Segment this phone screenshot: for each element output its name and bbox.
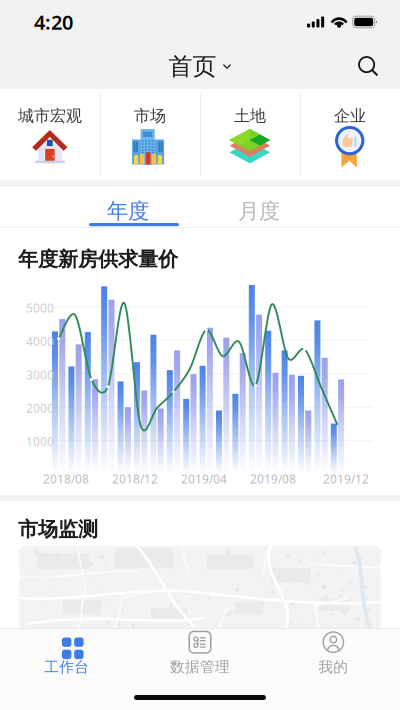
staticText: 2019/04: [181, 471, 227, 487]
staticText: 市场监测: [18, 517, 98, 542]
staticText: 4000: [26, 333, 54, 349]
staticText: 3000: [26, 367, 54, 383]
staticText: 城市宏观: [18, 106, 82, 126]
staticText: 2018/12: [112, 471, 158, 487]
staticText: 2000: [26, 400, 54, 416]
staticText: 我的: [318, 658, 348, 676]
button[interactable]: 土地: [200, 89, 300, 180]
staticText: 2019/12: [323, 471, 369, 487]
button[interactable]: 年度: [89, 187, 179, 228]
staticText: 数据管理: [170, 658, 230, 676]
button[interactable]: Search: [350, 48, 387, 85]
staticText: 工作台: [44, 658, 89, 676]
button[interactable]: 数据管理: [133, 624, 267, 683]
staticText: 5000: [26, 300, 54, 316]
staticText: 年度: [107, 198, 149, 224]
staticText: 首页: [168, 52, 216, 81]
button[interactable]: 首页: [158, 45, 241, 88]
staticText: 土地: [234, 106, 266, 126]
staticText: 月度: [238, 198, 280, 224]
staticText: 4:20: [34, 9, 73, 35]
staticText: 市场: [134, 106, 166, 126]
button[interactable]: 市场: [100, 89, 200, 180]
button[interactable]: 企业: [300, 89, 400, 180]
button[interactable]: 工作台: [0, 624, 133, 683]
staticText: 年度新房供求量价: [18, 247, 178, 272]
staticText: 企业: [334, 106, 366, 126]
button[interactable]: 月度: [220, 187, 310, 228]
staticText: 2019/08: [250, 471, 296, 487]
staticText: 1000: [26, 434, 54, 449]
button[interactable]: 我的: [267, 624, 400, 683]
staticText: 2018/08: [43, 471, 89, 487]
button[interactable]: 城市宏观: [0, 89, 100, 180]
